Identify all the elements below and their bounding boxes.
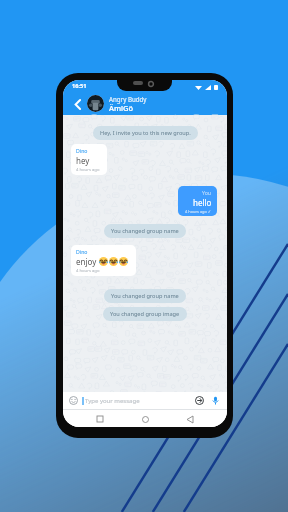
button[interactable]: You changed group name [104,224,186,238]
staticText: Type your message [85,397,195,405]
staticText: Dino [76,248,88,255]
staticText: Angry Buddy [109,95,147,103]
staticText: You [202,189,212,196]
staticText: 16:51 [72,82,87,90]
button[interactable]: Back [182,411,198,427]
button[interactable]: Home [137,411,153,427]
staticText: You changed group name [111,292,179,300]
staticText: 4 hours ago ✓ [185,209,212,214]
button[interactable]: You [178,186,217,216]
staticText: enjoy [76,256,97,267]
staticText: hey [76,155,90,166]
staticText: You changed group image [110,310,180,318]
staticText: ÄmlGö [109,103,134,113]
button[interactable]: Emoji [69,396,78,405]
staticText: You changed group name [111,227,179,235]
button[interactable]: You changed group image [103,307,187,321]
staticText: hello [193,197,212,208]
button[interactable]: Dino [71,245,136,276]
staticText: Dino [76,147,88,154]
button[interactable]: Back [72,98,84,110]
button[interactable]: Recents [92,411,108,427]
button[interactable]: Voice message [211,396,220,405]
staticText: Hey, I invite you to this new group. [100,129,191,137]
button[interactable]: Hey, I invite you to this new group. [93,126,198,140]
button[interactable]: Dino [71,144,107,175]
staticText: 4 hours ago [76,268,100,274]
staticText: 4 hours ago [76,167,100,173]
button[interactable]: You changed group name [104,289,186,303]
button[interactable]: Profile photo [87,95,104,112]
button[interactable]: Attach [195,396,204,405]
